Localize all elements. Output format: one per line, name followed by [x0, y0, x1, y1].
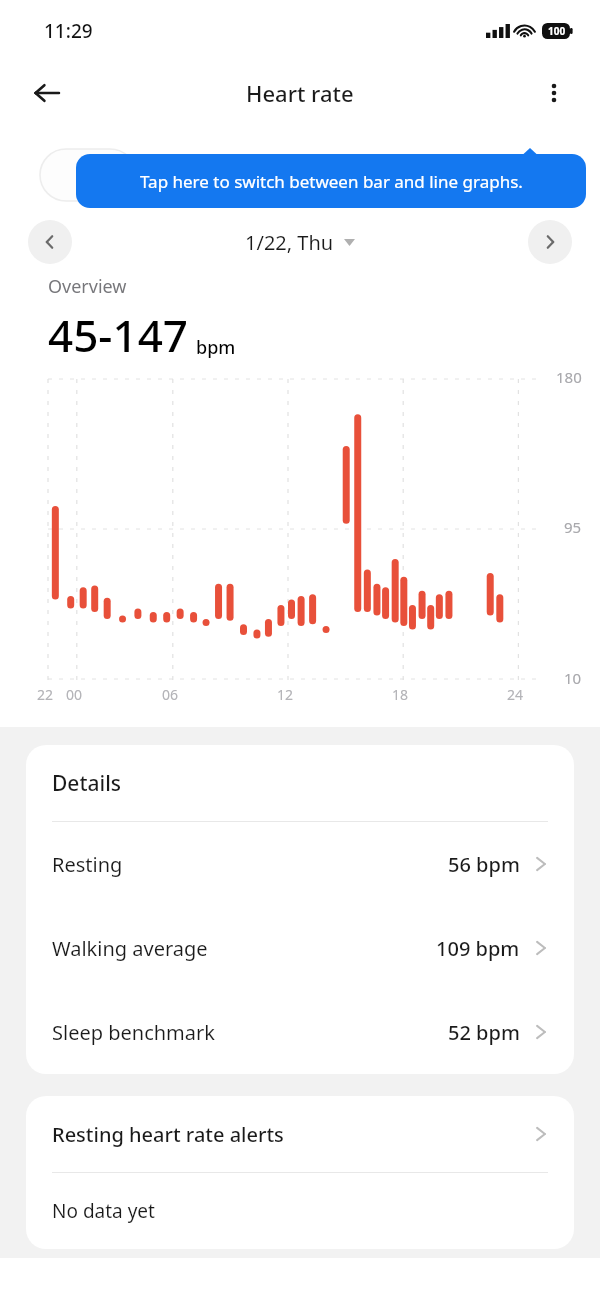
- button[interactable]: More options: [530, 69, 578, 117]
- button[interactable]: Walking average: [26, 906, 574, 990]
- staticText: No data yet: [52, 1198, 155, 1224]
- button[interactable]: [40, 149, 136, 201]
- staticText: 24: [507, 685, 524, 704]
- staticText: Tap here to switch between bar and line …: [140, 170, 523, 193]
- staticText: 100: [548, 24, 566, 38]
- staticText: Overview: [48, 274, 127, 299]
- staticText: bpm: [196, 335, 236, 360]
- staticText: Resting: [52, 851, 448, 878]
- staticText: Sleep benchmark: [52, 1019, 448, 1046]
- staticText: 1/22, Thu: [245, 229, 334, 256]
- staticText: 00: [66, 685, 83, 704]
- button[interactable]: Resting: [26, 822, 574, 906]
- staticText: 06: [162, 685, 179, 704]
- staticText: Resting heart rate alerts: [52, 1121, 534, 1148]
- button[interactable]: 1/22, Thu: [245, 229, 355, 256]
- staticText: Details: [52, 769, 122, 798]
- staticText: 52 bpm: [448, 1019, 520, 1046]
- button[interactable]: Sleep benchmark: [26, 990, 574, 1074]
- staticText: 10: [564, 668, 582, 688]
- staticText: 180: [556, 367, 582, 387]
- staticText: Walking average: [52, 935, 436, 962]
- staticText: 45-147: [48, 305, 188, 365]
- button[interactable]: Next day: [528, 220, 572, 264]
- staticText: 109 bpm: [436, 935, 520, 962]
- staticText: Heart rate: [246, 78, 354, 108]
- staticText: 11:29: [44, 18, 93, 44]
- staticText: 18: [392, 685, 409, 704]
- button[interactable]: Previous day: [28, 220, 72, 264]
- staticText: 95: [564, 517, 582, 537]
- button[interactable]: Tap here to switch between bar and line …: [76, 148, 586, 208]
- staticText: 12: [277, 685, 294, 704]
- staticText: 56 bpm: [448, 851, 520, 878]
- staticText: 22: [37, 685, 54, 704]
- button[interactable]: Back: [22, 68, 72, 118]
- button[interactable]: Resting heart rate alerts: [26, 1096, 574, 1172]
